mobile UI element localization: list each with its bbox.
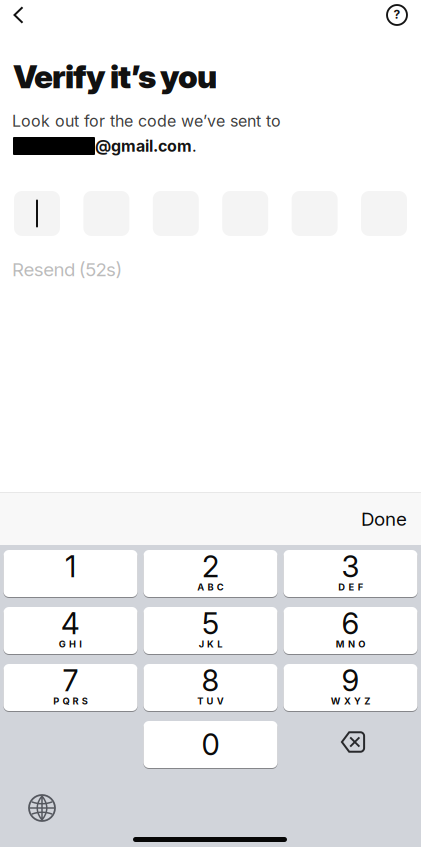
button[interactable]: 8 [143,664,277,711]
staticText: 9 [341,663,359,698]
button[interactable]: Next keyboard [20,786,64,830]
staticText: X [344,695,351,706]
staticText: Done [361,508,407,530]
staticText: Resend (52s) [12,258,122,280]
staticText: B [207,581,213,592]
staticText: 5 [202,606,219,641]
staticText: O [358,638,365,649]
staticText: E [348,581,354,592]
staticText: S [82,695,88,706]
staticText: A [197,581,204,592]
staticText: T [197,695,203,706]
button[interactable]: 0 [143,721,277,768]
staticText: L [217,638,222,649]
button[interactable]: Help [381,0,413,31]
staticText: D [338,581,345,592]
button[interactable]: Delete [283,721,417,768]
staticText: N [348,638,355,649]
staticText: . [192,137,197,155]
staticText: C [217,581,224,592]
staticText: F [358,581,363,592]
staticText: Q [62,695,69,706]
button[interactable]: Verification code [14,191,407,236]
button[interactable]: 3 [283,550,417,597]
staticText: W [331,695,341,706]
staticText: 2 [202,549,219,584]
button[interactable]: 4 [3,607,137,654]
button[interactable]: 9 [283,664,417,711]
staticText: U [206,695,213,706]
button[interactable]: 2 [143,550,277,597]
staticText: H [69,638,76,649]
staticText: 7 [62,663,78,698]
staticText: P [53,695,59,706]
staticText: 8 [201,663,219,698]
button[interactable]: 1 [3,550,137,597]
staticText: @gmail.com [95,137,192,155]
staticText: ? [393,7,400,22]
button[interactable]: 5 [143,607,277,654]
staticText: 6 [341,606,359,641]
staticText: 1 [65,549,76,584]
staticText: 0 [201,727,219,762]
staticText: Verify it’s you [13,58,217,95]
staticText: R [73,695,79,706]
staticText: I [79,638,82,649]
button[interactable]: Resend (52s) [12,259,212,279]
staticText: M [336,638,345,649]
button[interactable]: 6 [283,607,417,654]
staticText: J [199,638,204,649]
staticText: Look out for the code we’ve sent to [12,112,281,130]
staticText: K [207,638,214,649]
button[interactable]: 7 [3,664,137,711]
staticText: 3 [341,549,359,584]
staticText: Z [364,695,370,706]
staticText: 4 [61,606,80,641]
staticText: Y [354,695,361,706]
staticText: G [59,638,66,649]
button[interactable]: Back [2,0,34,31]
button[interactable]: Done [337,499,407,539]
staticText: V [217,695,224,706]
